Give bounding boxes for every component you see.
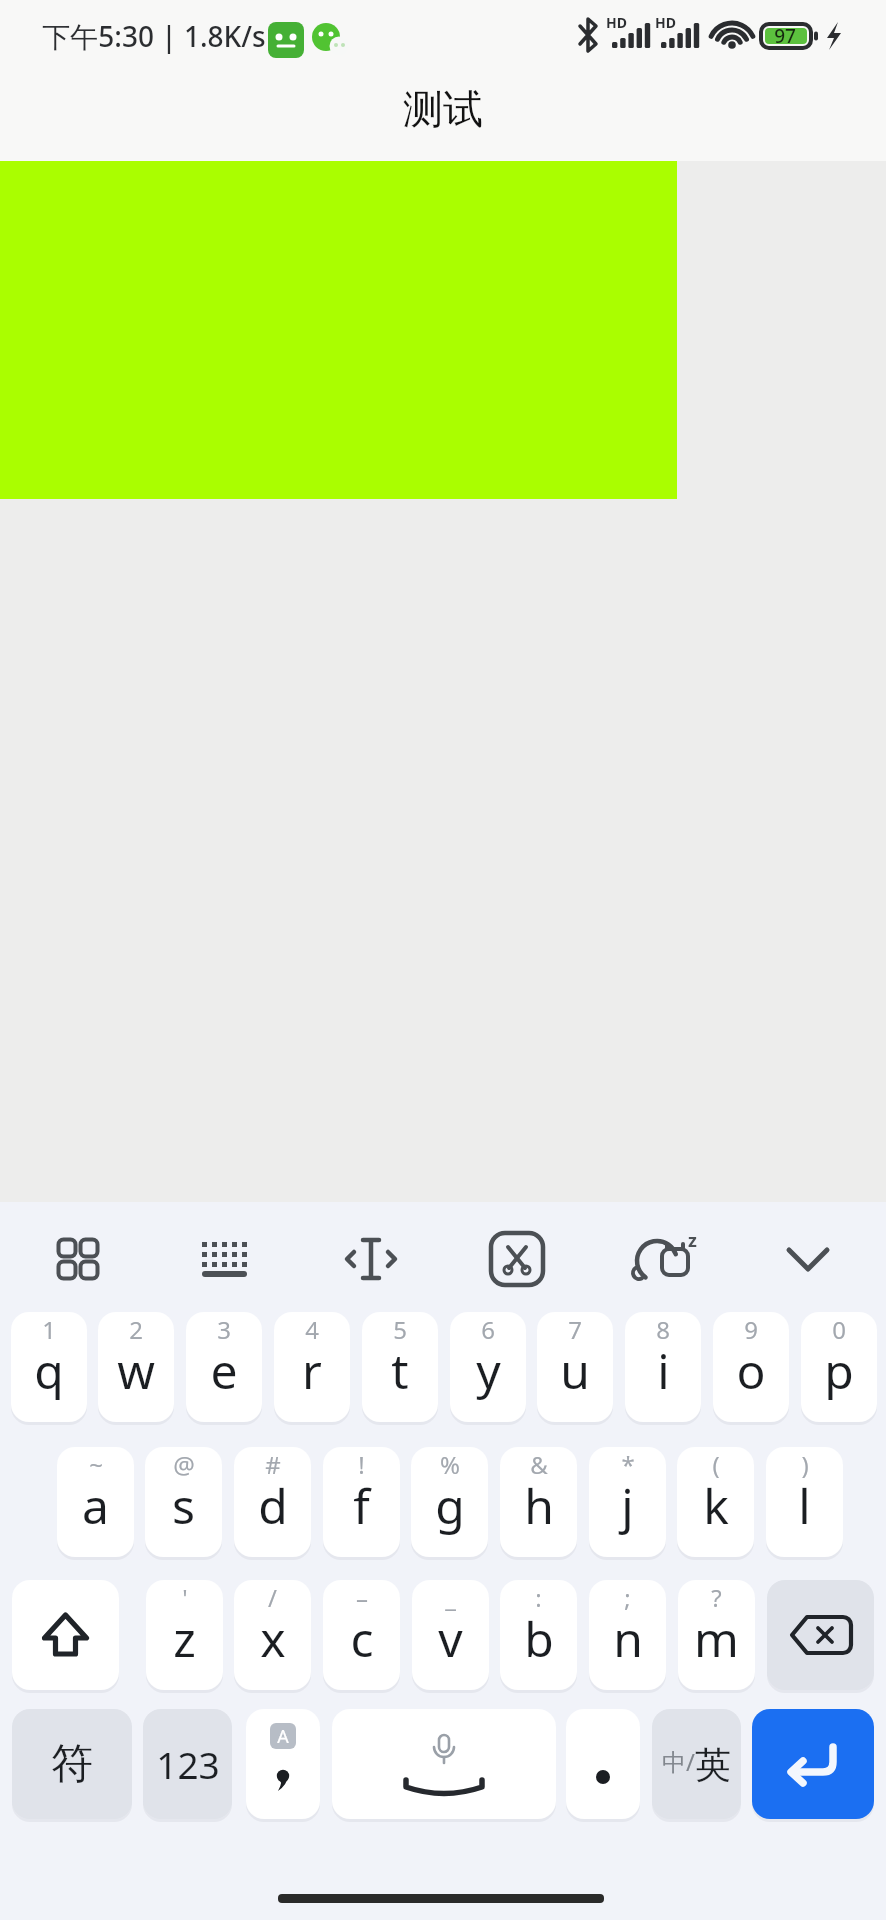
- staticText: *: [621, 1448, 635, 1481]
- staticText: /: [686, 1745, 695, 1778]
- button[interactable]: #: [234, 1447, 311, 1557]
- button[interactable]: [332, 1709, 556, 1819]
- staticText: n: [613, 1606, 643, 1671]
- staticText: t: [391, 1338, 409, 1403]
- staticText: ;: [624, 1581, 631, 1614]
- button[interactable]: 8: [625, 1312, 701, 1422]
- staticText: 0: [832, 1313, 846, 1346]
- button[interactable]: [767, 1580, 874, 1690]
- button[interactable]: %: [411, 1447, 488, 1557]
- button[interactable]: 1: [11, 1312, 87, 1422]
- button[interactable]: ~: [57, 1447, 134, 1557]
- staticText: j: [621, 1473, 634, 1538]
- button[interactable]: ;: [589, 1580, 666, 1690]
- button[interactable]: 符: [12, 1709, 132, 1819]
- button[interactable]: ': [146, 1580, 223, 1690]
- staticText: :: [535, 1581, 542, 1614]
- staticText: _: [445, 1581, 456, 1614]
- staticText: ': [182, 1581, 188, 1614]
- button[interactable]: A: [246, 1709, 320, 1819]
- staticText: 123: [156, 1739, 220, 1789]
- button[interactable]: :: [500, 1580, 577, 1690]
- button[interactable]: 4: [274, 1312, 350, 1422]
- staticText: h: [524, 1473, 554, 1538]
- button[interactable]: (: [677, 1447, 754, 1557]
- staticText: (: [712, 1448, 720, 1481]
- staticText: ~: [89, 1448, 103, 1481]
- staticText: 5: [393, 1313, 407, 1346]
- button[interactable]: 9: [713, 1312, 789, 1422]
- staticText: ): [801, 1448, 809, 1481]
- button[interactable]: 7: [537, 1312, 613, 1422]
- staticText: A: [277, 1724, 289, 1749]
- staticText: ?: [711, 1581, 722, 1614]
- button[interactable]: –: [323, 1580, 400, 1690]
- staticText: &: [530, 1448, 548, 1481]
- button[interactable]: [331, 1219, 411, 1299]
- staticText: !: [358, 1448, 365, 1481]
- staticText: #: [265, 1448, 281, 1481]
- button[interactable]: 3: [186, 1312, 262, 1422]
- staticText: k: [703, 1473, 729, 1538]
- button[interactable]: [184, 1219, 264, 1299]
- staticText: 9: [744, 1313, 758, 1346]
- staticText: 测试: [403, 84, 483, 134]
- button[interactable]: 123: [143, 1709, 232, 1819]
- staticText: –: [356, 1581, 368, 1614]
- staticText: f: [353, 1473, 370, 1538]
- button[interactable]: /: [234, 1580, 311, 1690]
- staticText: u: [560, 1338, 590, 1403]
- button[interactable]: 0: [801, 1312, 877, 1422]
- staticText: w: [117, 1338, 155, 1403]
- staticText: /: [268, 1581, 277, 1614]
- staticText: 6: [481, 1313, 495, 1346]
- staticText: o: [736, 1338, 766, 1403]
- staticText: %: [440, 1448, 460, 1481]
- button[interactable]: [624, 1219, 704, 1299]
- staticText: r: [302, 1338, 322, 1403]
- button[interactable]: 中: [652, 1709, 741, 1819]
- button[interactable]: [768, 1219, 848, 1299]
- staticText: 1: [42, 1313, 56, 1346]
- button[interactable]: *: [589, 1447, 666, 1557]
- button[interactable]: ): [766, 1447, 843, 1557]
- staticText: z: [173, 1606, 196, 1671]
- staticText: x: [260, 1606, 286, 1671]
- staticText: v: [438, 1606, 463, 1671]
- button[interactable]: @: [145, 1447, 222, 1557]
- button[interactable]: 2: [98, 1312, 174, 1422]
- staticText: c: [350, 1606, 374, 1671]
- button[interactable]: [566, 1709, 640, 1819]
- button[interactable]: [12, 1580, 119, 1690]
- staticText: i: [657, 1338, 670, 1403]
- button[interactable]: [38, 1219, 118, 1299]
- button[interactable]: ?: [678, 1580, 755, 1690]
- staticText: z: [688, 1228, 697, 1253]
- button[interactable]: !: [323, 1447, 400, 1557]
- staticText: 下午5:30 | 1.8K/s: [42, 17, 266, 55]
- staticText: e: [210, 1338, 238, 1403]
- staticText: d: [258, 1473, 288, 1538]
- staticText: 英: [695, 1742, 731, 1787]
- button[interactable]: [477, 1219, 557, 1299]
- button[interactable]: _: [412, 1580, 489, 1690]
- staticText: 97: [774, 23, 796, 49]
- button[interactable]: 6: [450, 1312, 526, 1422]
- staticText: 2: [129, 1313, 143, 1346]
- staticText: 7: [568, 1313, 582, 1346]
- staticText: b: [524, 1606, 554, 1671]
- button[interactable]: [752, 1709, 874, 1819]
- staticText: l: [798, 1473, 811, 1538]
- staticText: p: [824, 1338, 854, 1403]
- staticText: a: [82, 1473, 109, 1538]
- button[interactable]: &: [500, 1447, 577, 1557]
- staticText: HD: [655, 13, 676, 32]
- staticText: HD: [606, 13, 627, 32]
- button[interactable]: 5: [362, 1312, 438, 1422]
- staticText: 8: [656, 1313, 670, 1346]
- staticText: q: [34, 1338, 64, 1403]
- staticText: y: [476, 1338, 501, 1403]
- staticText: @: [173, 1448, 195, 1481]
- staticText: 中: [662, 1748, 686, 1778]
